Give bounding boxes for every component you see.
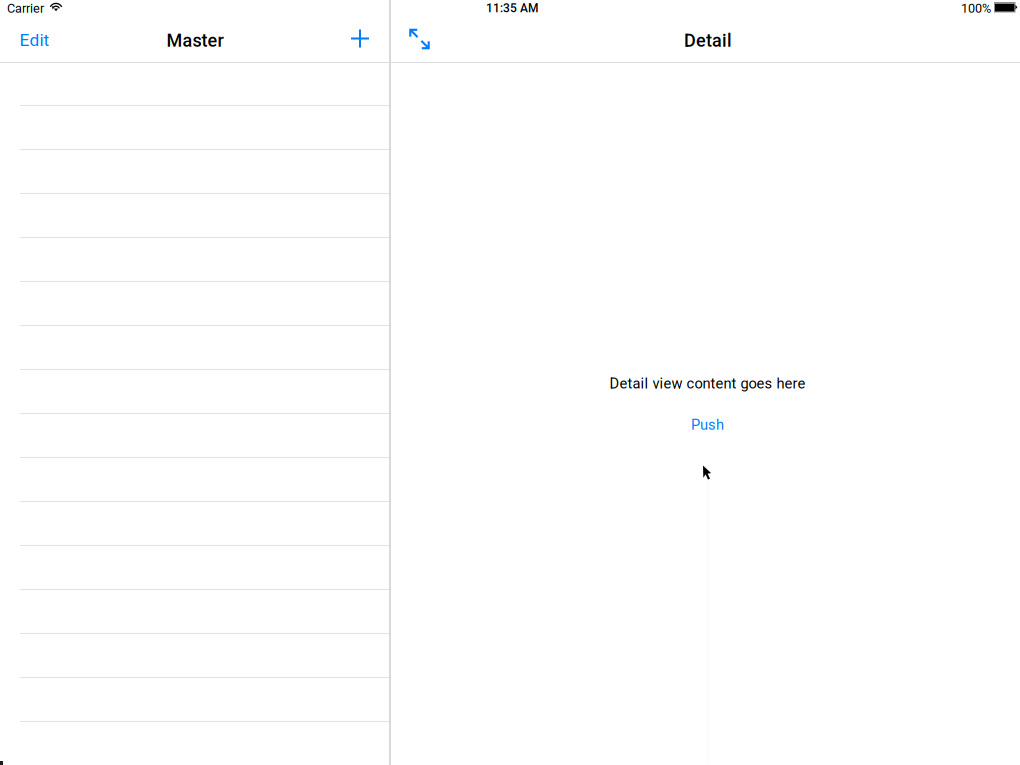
button[interactable] [0, 634, 390, 678]
button[interactable] [0, 150, 390, 194]
button[interactable]: Push [679, 412, 736, 437]
staticText: 11:35 AM [486, 1, 538, 15]
button[interactable] [0, 238, 390, 282]
button[interactable] [0, 370, 390, 414]
staticText: Edit [19, 30, 49, 50]
button[interactable] [0, 106, 390, 150]
staticText: Master [166, 30, 223, 51]
staticText: Detail [684, 30, 732, 51]
button[interactable] [0, 414, 390, 458]
button[interactable]: Edit [9, 19, 59, 61]
button[interactable]: Expand [400, 17, 439, 60]
staticText: Push [691, 416, 724, 433]
button[interactable] [0, 282, 390, 326]
staticText: 100% [961, 1, 991, 16]
button[interactable] [0, 590, 390, 634]
button[interactable] [0, 458, 390, 502]
button[interactable] [0, 546, 390, 590]
button[interactable] [0, 194, 390, 238]
staticText: Carrier [7, 1, 44, 16]
button[interactable] [0, 678, 390, 722]
button[interactable]: Add [339, 17, 381, 59]
button[interactable] [0, 63, 390, 106]
button[interactable] [0, 326, 390, 370]
button[interactable] [0, 722, 390, 765]
staticText: Detail view content goes here [609, 375, 805, 392]
button[interactable] [0, 502, 390, 546]
